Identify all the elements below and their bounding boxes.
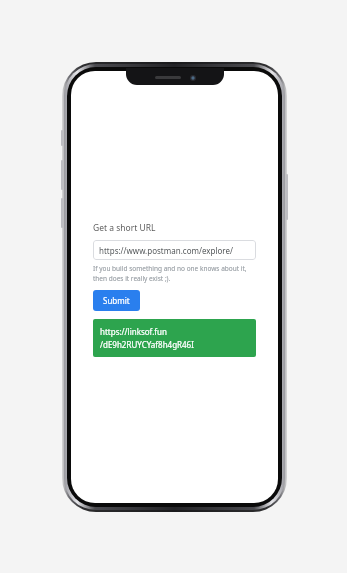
staticText: Submit <box>103 295 130 306</box>
staticText: /dE9h2RUYCYaf8h4gR46I <box>100 339 194 350</box>
button[interactable]: https://www.postman.com/explore/apis/c <box>93 240 256 260</box>
staticText: https://www.postman.com/explore/apis/c <box>99 245 250 256</box>
button[interactable]: Shortened URL result <box>93 319 256 357</box>
button[interactable]: Submit <box>93 290 140 311</box>
staticText: https://linksof.fun <box>100 326 167 337</box>
staticText: If you build something and no one knows … <box>93 264 256 283</box>
staticText: Get a short URL <box>93 222 156 234</box>
